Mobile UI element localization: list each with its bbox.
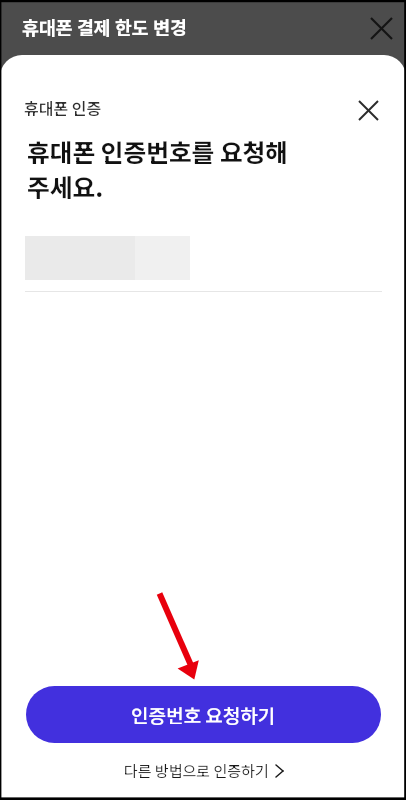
button[interactable]: Close (360, 7, 402, 49)
staticText: 휴대폰 인증번호를 요청해 주세요. (27, 133, 289, 204)
staticText: 다른 방법으로 인증하기 (124, 760, 269, 782)
button[interactable]: 인증번호 요청하기 (26, 686, 381, 743)
staticText: 휴대폰 인증 (24, 96, 102, 119)
button[interactable]: 다른 방법으로 인증하기 (112, 754, 295, 788)
staticText: 인증번호 요청하기 (131, 701, 276, 729)
button[interactable]: Close sheet (347, 89, 389, 131)
staticText: 휴대폰 결제 한도 변경 (22, 14, 187, 41)
